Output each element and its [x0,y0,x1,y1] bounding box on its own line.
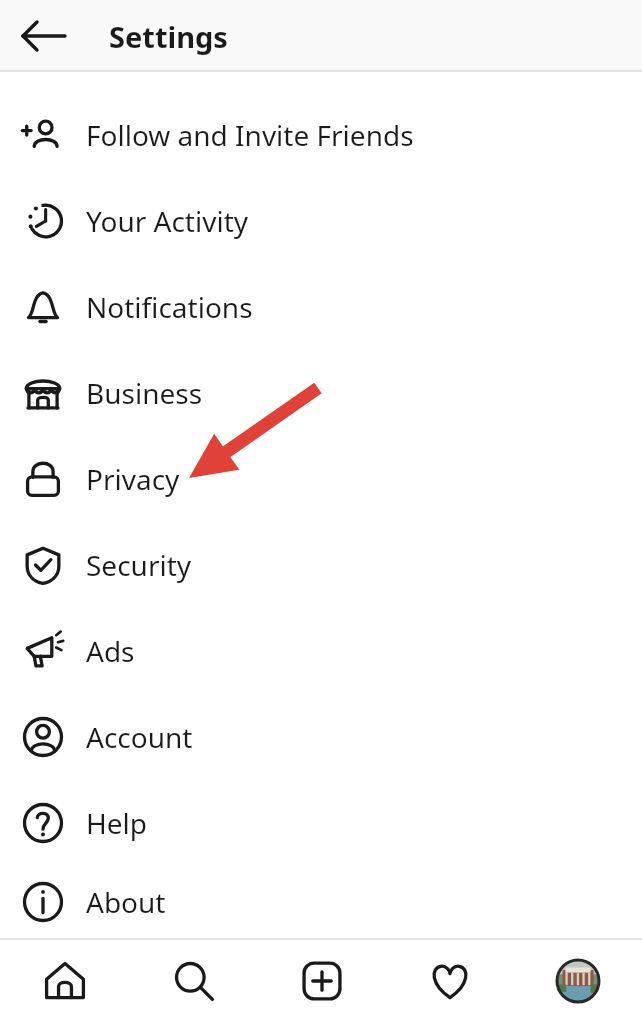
button[interactable]: About [0,866,642,938]
button[interactable]: Activity [386,938,514,1024]
button[interactable]: Back [8,0,80,72]
button[interactable]: Your Activity [0,178,642,264]
button[interactable]: Profile [514,938,642,1024]
staticText: Notifications [86,288,253,326]
staticText: Settings [109,17,228,56]
button[interactable]: Help [0,780,642,866]
staticText: About [86,883,166,921]
staticText: Security [86,546,192,584]
staticText: Ads [86,632,135,670]
staticText: Your Activity [86,202,249,240]
button[interactable]: Search [129,938,258,1024]
button[interactable]: Security [0,522,642,608]
button[interactable]: Privacy [0,436,642,522]
button[interactable]: Home [0,938,129,1024]
button[interactable]: Create [258,938,386,1024]
staticText: Privacy [86,460,180,498]
staticText: Account [86,718,193,756]
staticText: Business [86,374,203,412]
button[interactable]: Business [0,350,642,436]
button[interactable]: Account [0,694,642,780]
button[interactable]: Notifications [0,264,642,350]
button[interactable]: Ads [0,608,642,694]
button[interactable]: Follow and Invite Friends [0,92,642,178]
staticText: Follow and Invite Friends [86,116,414,154]
staticText: Help [86,804,147,842]
